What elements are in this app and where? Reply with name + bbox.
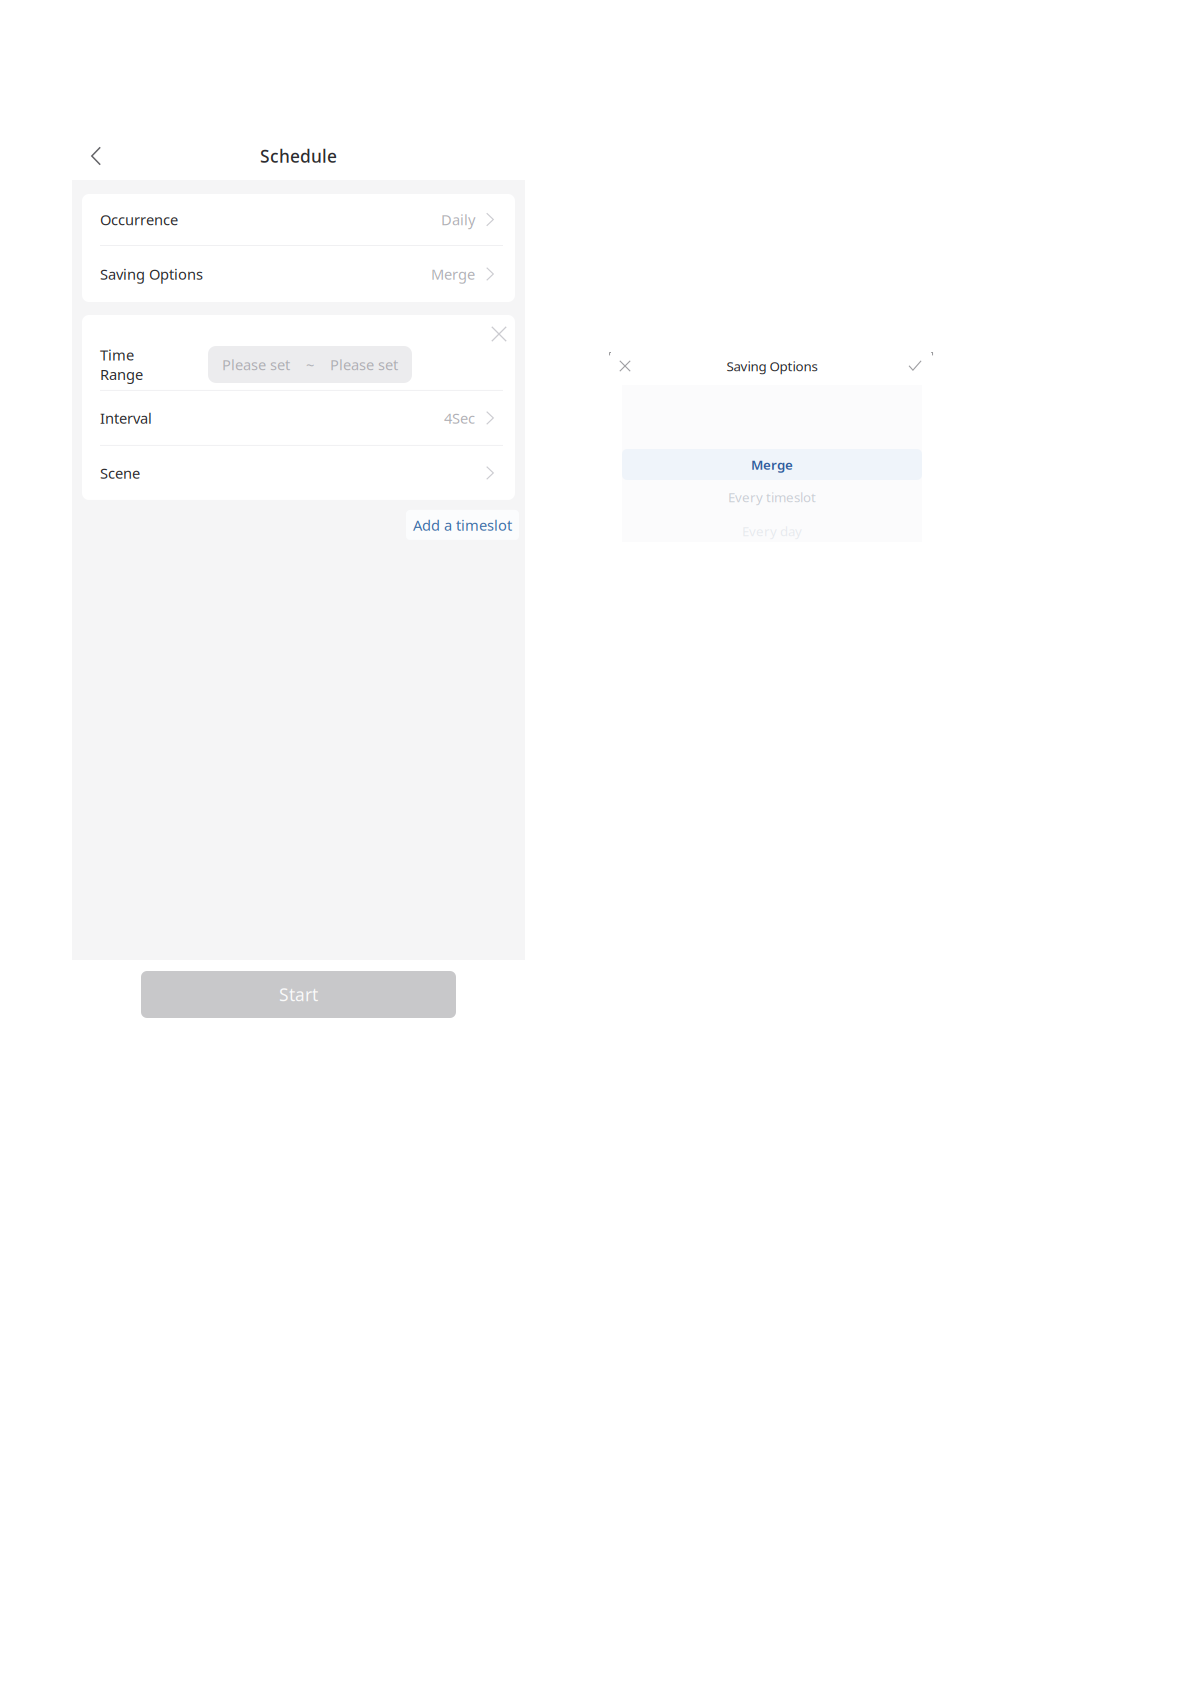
staticText: Scene xyxy=(100,463,140,483)
button[interactable]: Please set xyxy=(208,346,412,383)
staticText: Interval xyxy=(100,408,152,428)
staticText: Time Range xyxy=(100,345,143,384)
staticText: Add a timeslot xyxy=(413,515,512,535)
button[interactable]: Scene xyxy=(82,446,515,500)
staticText: ~ xyxy=(306,355,314,374)
staticText: Occurrence xyxy=(100,210,178,229)
staticText: Daily xyxy=(441,210,475,229)
staticText: Every day xyxy=(742,522,802,540)
staticText: Please set xyxy=(222,355,290,374)
staticText: Saving Options xyxy=(100,264,203,284)
button[interactable]: Merge xyxy=(622,449,922,480)
button[interactable]: Confirm xyxy=(900,351,930,381)
staticText: 4Sec xyxy=(444,408,475,428)
button[interactable]: Every timeslot xyxy=(622,480,922,514)
button[interactable]: Back xyxy=(77,137,115,175)
button[interactable]: Saving Options xyxy=(82,246,515,302)
button[interactable]: Add a timeslot xyxy=(406,510,519,540)
staticText: Every timeslot xyxy=(728,488,816,506)
button[interactable]: Occurrence xyxy=(82,194,515,245)
button[interactable]: Remove timeslot xyxy=(485,320,513,348)
button[interactable]: Close xyxy=(610,351,640,381)
staticText: Please set xyxy=(330,355,398,374)
staticText: Merge xyxy=(751,456,793,473)
button[interactable]: Start xyxy=(141,971,456,1018)
staticText: Merge xyxy=(431,264,475,284)
staticText: Schedule xyxy=(260,144,337,167)
staticText: Saving Options xyxy=(726,357,817,375)
staticText: Start xyxy=(279,983,318,1006)
button[interactable]: Interval xyxy=(82,391,515,445)
